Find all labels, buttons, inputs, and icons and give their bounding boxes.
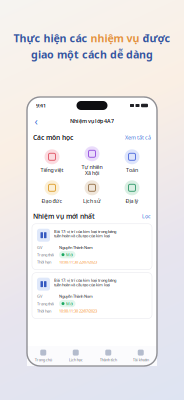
button[interactable]: Trang chủ (27, 350, 59, 362)
staticText: Nhiệm vụ mới nhất (33, 212, 95, 221)
staticText: Địa lý (125, 197, 138, 204)
staticText: Nhiệm vụ lớp 4A7 (70, 117, 114, 125)
staticText: Lọc (142, 213, 151, 220)
staticText: Thực hiện các (13, 31, 87, 45)
staticText: Xem tất cả (125, 134, 151, 141)
staticText: Tự nhiên (81, 163, 102, 170)
button[interactable]: Xem tất cả (125, 134, 151, 141)
staticText: Các môn học (33, 133, 73, 142)
staticText: tuần hoàn và cấu tạo của kim loại (54, 233, 110, 238)
staticText: tuần hoàn và cấu tạo của kim loại (54, 282, 110, 287)
staticText: Toán (126, 166, 138, 173)
staticText: Trạng thái (37, 301, 54, 306)
button[interactable]: Lịch học (59, 350, 92, 362)
button[interactable]: Back (31, 116, 41, 126)
staticText: Trang chủ (35, 357, 52, 362)
staticText: 9:41 (36, 102, 46, 109)
button[interactable]: Tự nhiên (72, 146, 112, 177)
staticText: ‹ (34, 114, 37, 128)
staticText: nhiệm vụ (90, 31, 139, 45)
staticText: Thời hạn (37, 308, 51, 314)
staticText: 10:00-11:30 22/07/2023 (59, 308, 97, 314)
button[interactable]: Tiếng việt (32, 146, 72, 177)
staticText: giao một cách dễ dàng (31, 47, 153, 61)
staticText: Đạo đức (41, 197, 62, 204)
staticText: Thời hạn (37, 259, 51, 265)
staticText: Lịch sử (83, 197, 101, 204)
staticText: Thành tích (100, 357, 117, 362)
button[interactable]: Thành tích (92, 350, 124, 362)
staticText: Nguyễn Thành Nam (59, 294, 93, 299)
staticText: Xã hội (85, 169, 99, 176)
button[interactable]: Địa lý (112, 177, 152, 208)
staticText: Lịch học (69, 357, 83, 362)
button[interactable]: Đạo đức (32, 177, 72, 208)
staticText: Mới (66, 301, 73, 306)
button[interactable]: Tài khoản (124, 350, 157, 362)
staticText: Bài 17: vị trí của kim loại trong bảng (54, 278, 116, 283)
button[interactable]: Lọc (142, 213, 151, 220)
staticText: Nguyễn Thành Nam (59, 245, 93, 250)
staticText: được (142, 31, 170, 45)
button[interactable]: Bài 17: vị trí của kim loại trong bảng (32, 224, 152, 270)
staticText: Bài 17: vị trí của kim loại trong bảng (54, 229, 116, 234)
staticText: 10:00-11:30 22/07/2023 (59, 259, 97, 265)
button[interactable]: Toán (112, 146, 152, 177)
button[interactable]: Lịch sử (72, 177, 112, 208)
staticText: Tiếng việt (40, 166, 63, 173)
staticText: Tài khoản (133, 357, 149, 362)
button[interactable]: Bài 17: vị trí của kim loại trong bảng (32, 273, 152, 318)
staticText: Mới (66, 252, 73, 257)
staticText: Trạng thái (37, 252, 54, 257)
staticText: GV (37, 245, 42, 250)
staticText: GV (37, 294, 42, 299)
